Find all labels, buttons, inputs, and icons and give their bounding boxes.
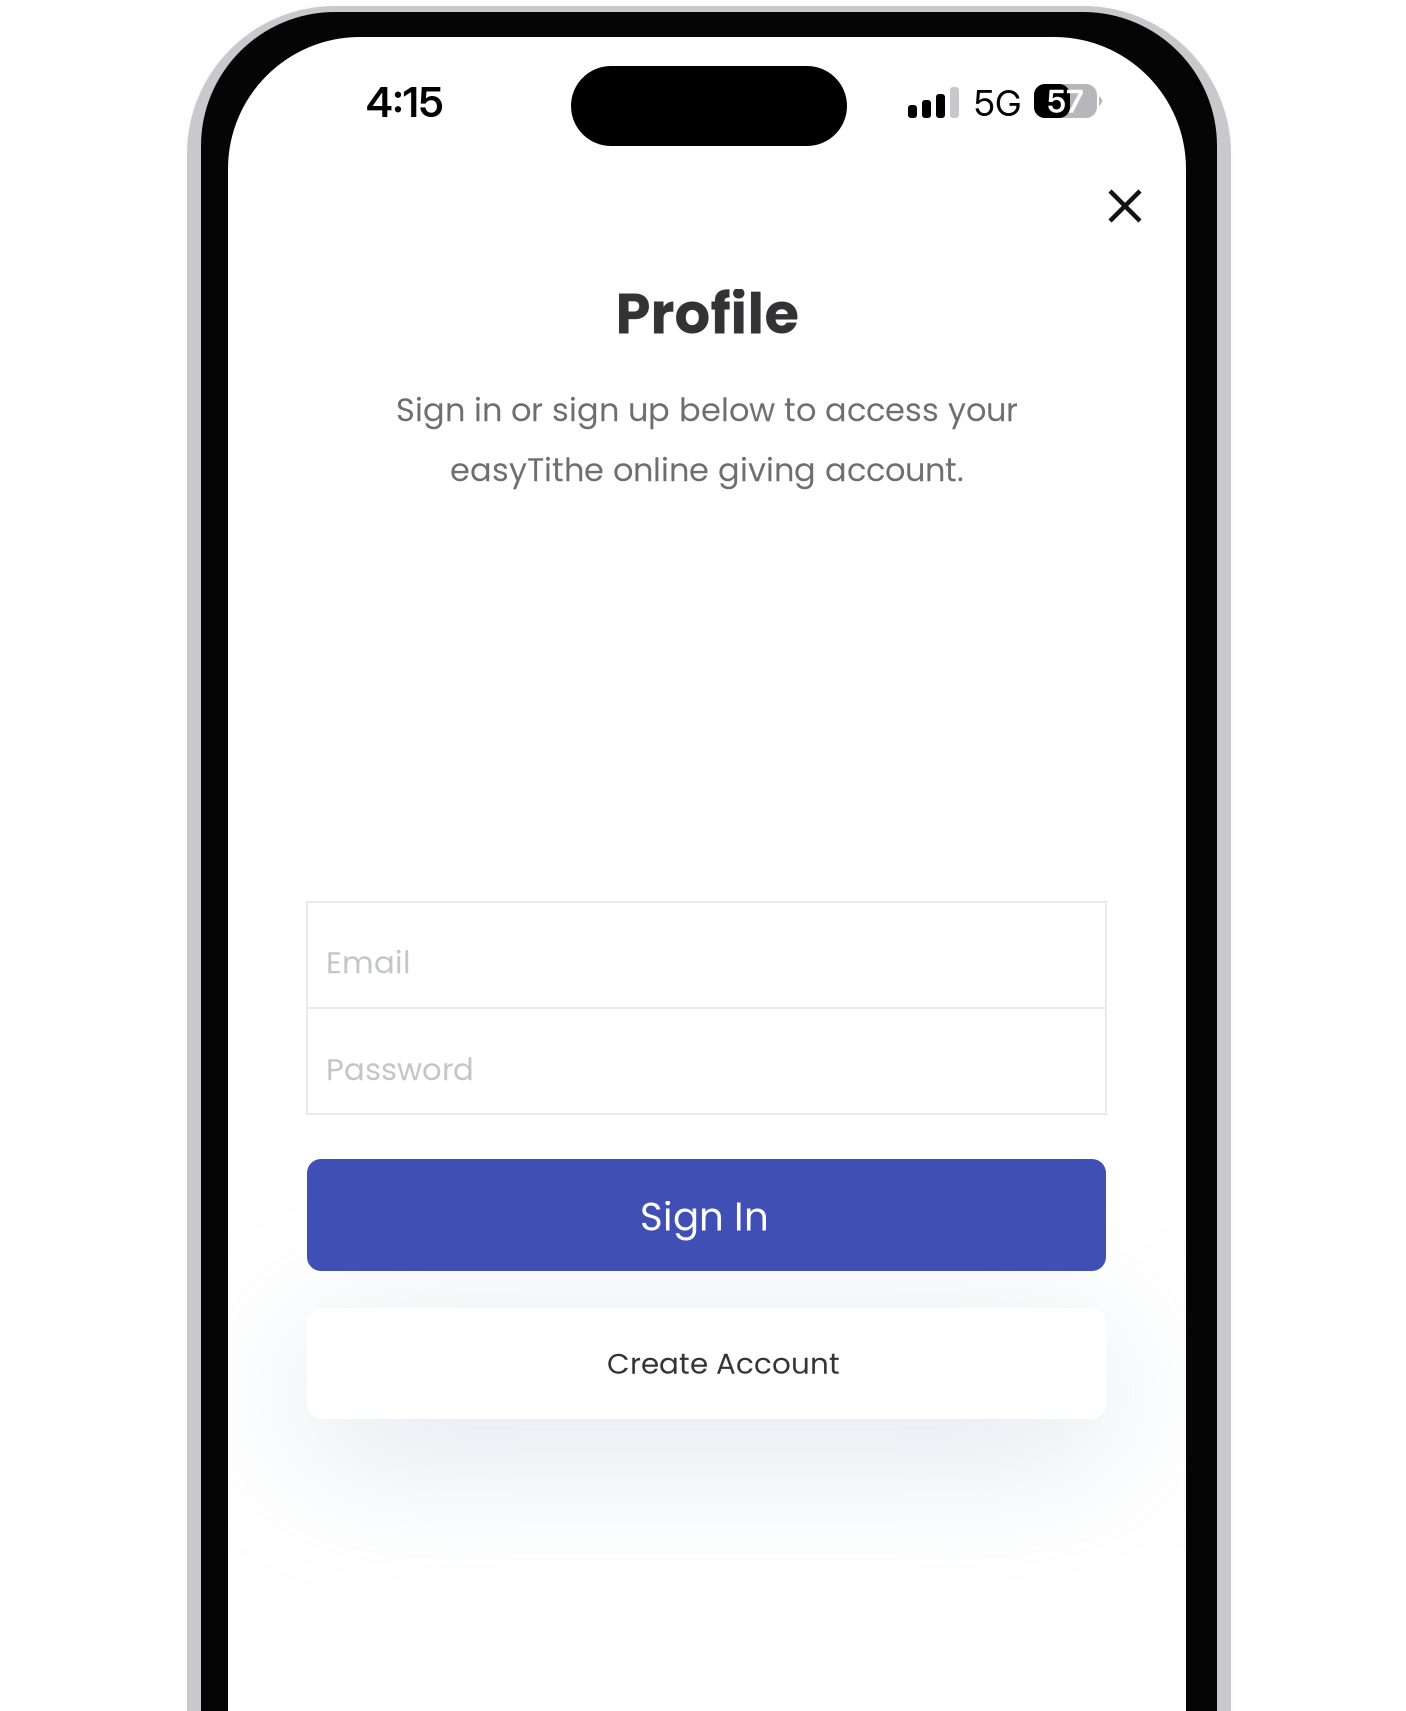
- staticText: 57: [1047, 82, 1084, 120]
- staticText: Create Account: [607, 1343, 840, 1384]
- staticText: 4:15: [366, 77, 444, 127]
- staticText: Profile: [615, 275, 798, 353]
- staticText: Email: [326, 941, 411, 984]
- button[interactable]: Close: [1090, 171, 1160, 241]
- staticText: easyTithe online giving account.: [450, 448, 964, 492]
- button[interactable]: Create Account: [307, 1308, 1106, 1419]
- button[interactable]: Sign In: [307, 1159, 1106, 1271]
- staticText: Password: [326, 1048, 474, 1091]
- staticText: 5G: [974, 81, 1021, 125]
- staticText: Sign in or sign up below to access your: [396, 388, 1018, 432]
- staticText: Sign In: [640, 1190, 769, 1244]
